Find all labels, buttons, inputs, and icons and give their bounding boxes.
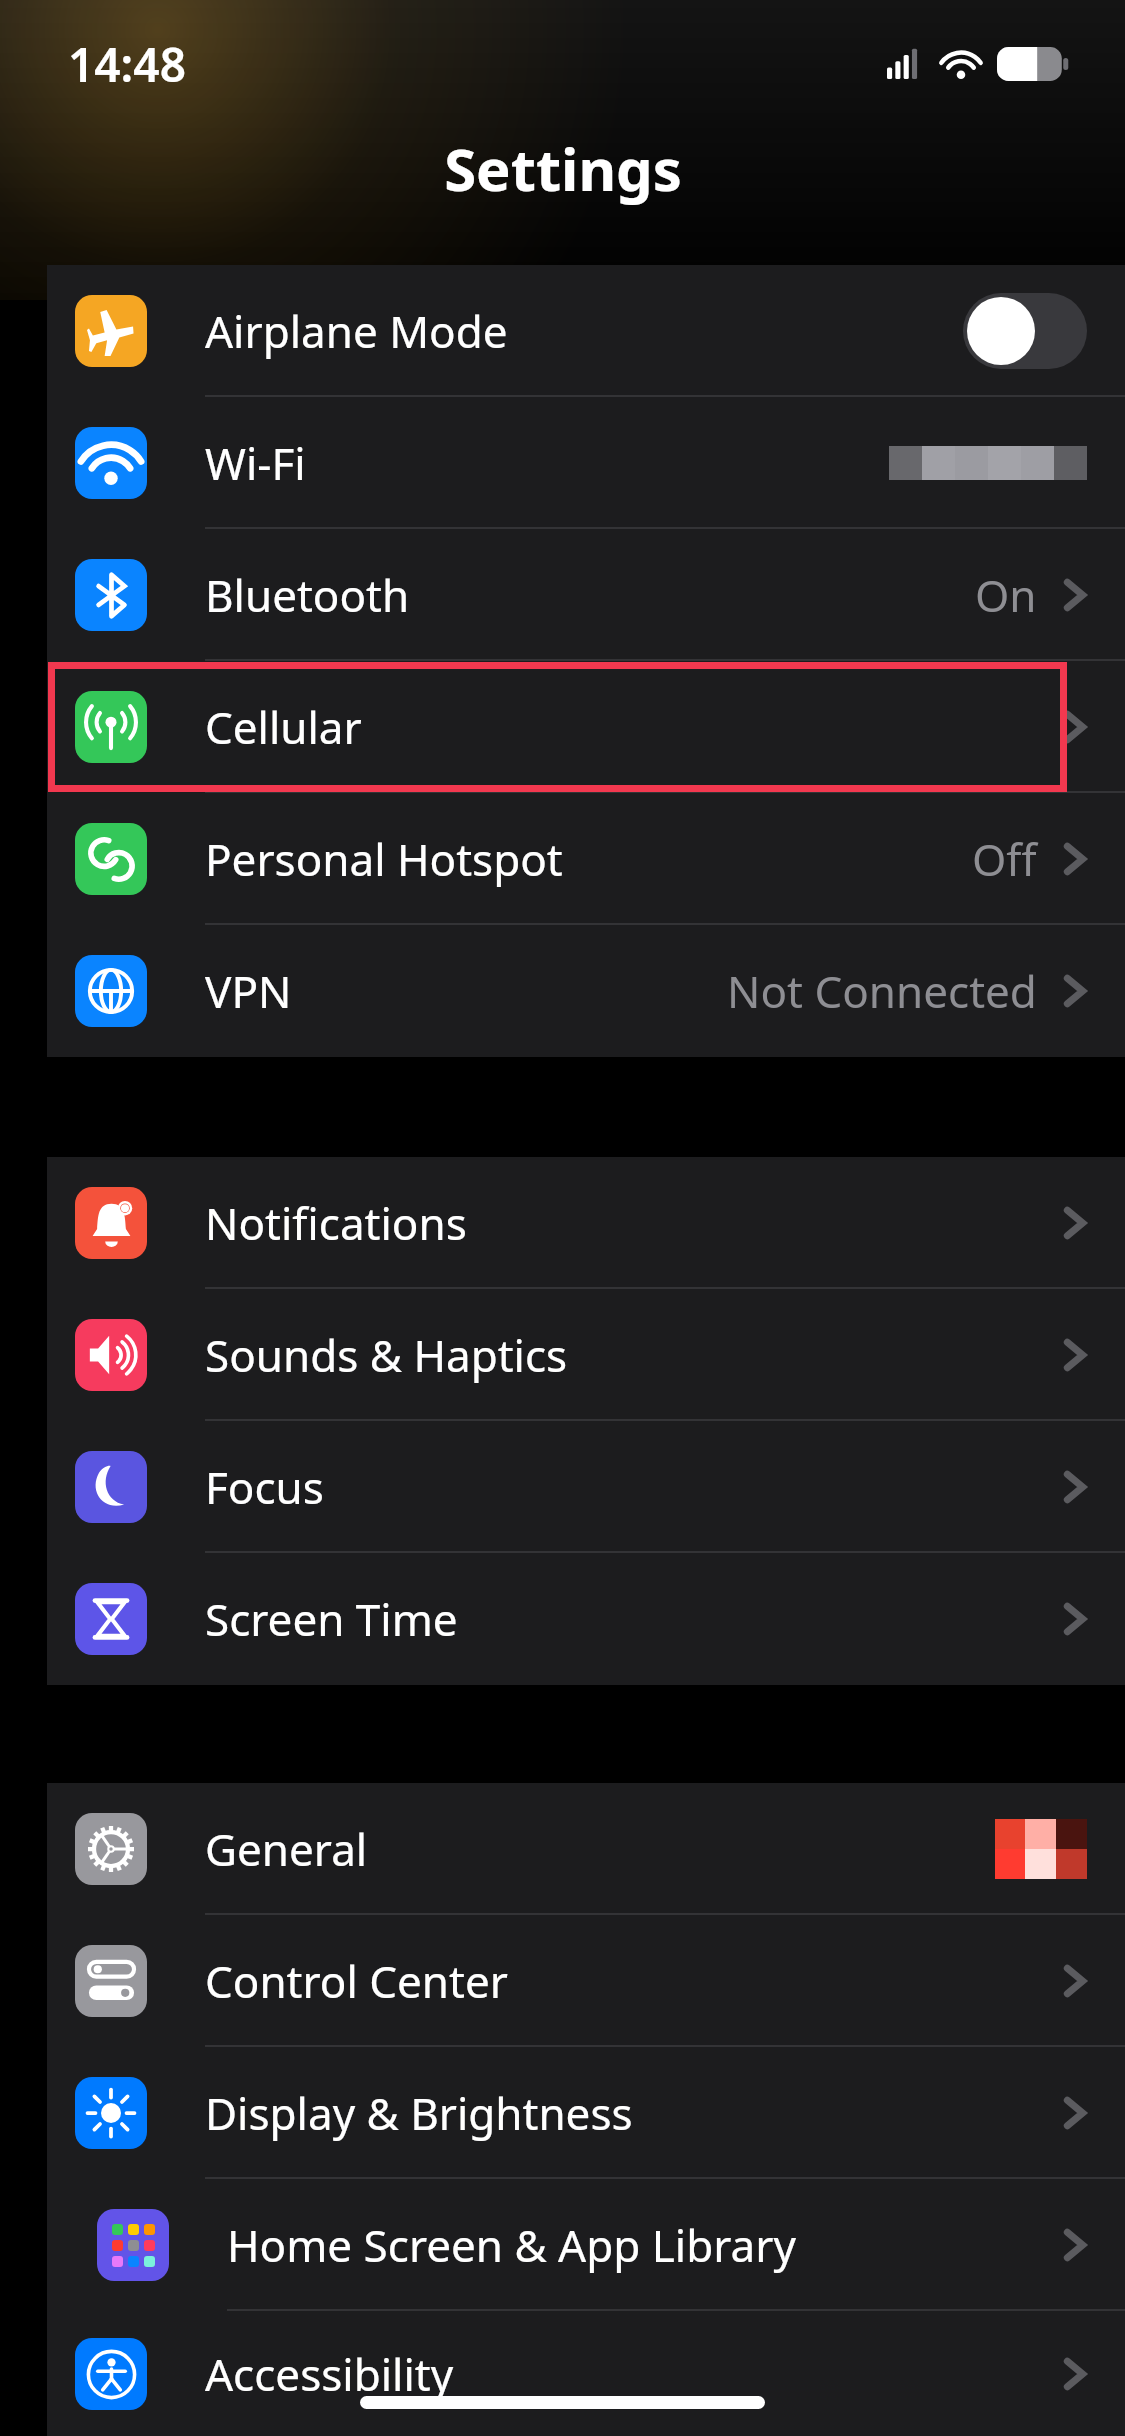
staticText: 14:48 — [68, 33, 186, 96]
staticText: Not Connected — [727, 961, 1037, 1021]
button[interactable]: Screen Time — [47, 1553, 1125, 1685]
staticText: Sounds & Haptics — [205, 1325, 568, 1385]
staticText: Bluetooth — [205, 565, 410, 625]
button[interactable]: Wi-Fi — [47, 397, 1125, 529]
button[interactable]: Display & Brightness — [47, 2047, 1125, 2179]
staticText: Home Screen & App Library — [227, 2215, 796, 2275]
button[interactable]: Airplane Mode toggle, off — [963, 293, 1087, 369]
button[interactable]: Bluetooth — [47, 529, 1125, 661]
button[interactable]: Control Center — [47, 1915, 1125, 2047]
staticText: Personal Hotspot — [205, 829, 563, 889]
staticText: Focus — [205, 1457, 324, 1517]
button[interactable]: Notifications — [47, 1157, 1125, 1289]
button[interactable]: Accessibility — [47, 2311, 1125, 2436]
staticText: Off — [972, 829, 1037, 889]
staticText: Cellular — [205, 697, 362, 757]
button[interactable]: Airplane Mode — [47, 265, 1125, 397]
staticText: Wi-Fi — [205, 433, 306, 493]
staticText: Control Center — [205, 1951, 508, 2011]
button[interactable]: Home Screen & App Library — [47, 2179, 1125, 2311]
staticText: Accessibility — [205, 2344, 454, 2404]
button[interactable]: General — [47, 1783, 1125, 1915]
button[interactable]: Personal Hotspot — [47, 793, 1125, 925]
staticText: Airplane Mode — [205, 301, 508, 361]
staticText: Notifications — [205, 1193, 467, 1253]
staticText: VPN — [205, 961, 292, 1021]
button[interactable]: Cellular — [47, 661, 1125, 793]
button[interactable]: Focus — [47, 1421, 1125, 1553]
staticText: Display & Brightness — [205, 2083, 633, 2143]
staticText: General — [205, 1819, 368, 1879]
staticText: On — [975, 565, 1037, 625]
staticText: Screen Time — [205, 1589, 458, 1649]
button[interactable]: VPN — [47, 925, 1125, 1057]
button[interactable]: Sounds & Haptics — [47, 1289, 1125, 1421]
staticText: Settings — [444, 129, 682, 208]
